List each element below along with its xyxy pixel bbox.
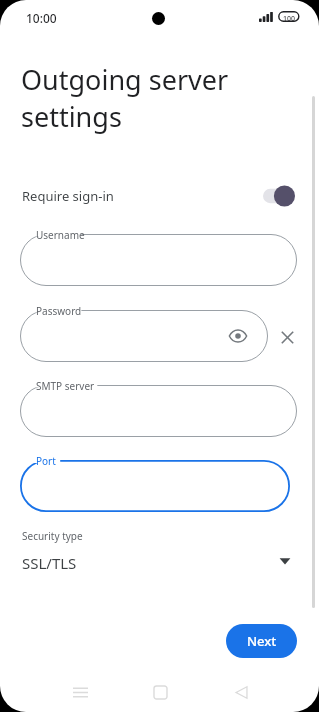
button[interactable]: Next xyxy=(226,624,297,658)
button[interactable] xyxy=(20,460,290,512)
staticText: Next xyxy=(247,632,277,650)
button[interactable]: Back xyxy=(226,672,256,712)
staticText: Outgoing server xyxy=(21,61,229,98)
staticText: Require sign-in xyxy=(22,187,114,205)
button[interactable]: Recent apps xyxy=(65,672,95,712)
button[interactable] xyxy=(20,385,297,437)
button[interactable] xyxy=(20,234,297,286)
staticText: settings xyxy=(21,98,122,135)
staticText: SMTP server xyxy=(36,379,95,393)
button[interactable]: Require sign-in xyxy=(0,180,319,212)
staticText: Username xyxy=(36,228,85,242)
staticText: Port xyxy=(36,454,56,468)
staticText: 10:00 xyxy=(26,10,57,26)
button[interactable]: Security type xyxy=(0,524,319,582)
button[interactable]: Show password xyxy=(224,322,252,350)
button[interactable] xyxy=(20,310,268,362)
staticText: Security type xyxy=(22,529,83,543)
staticText: SSL/TLS xyxy=(22,553,77,573)
button[interactable]: Clear password xyxy=(273,323,301,351)
button[interactable]: Home xyxy=(145,672,175,712)
button[interactable]: Require sign-in toggle xyxy=(263,184,296,208)
staticText: 100 xyxy=(283,14,296,24)
staticText: Password xyxy=(36,304,82,318)
